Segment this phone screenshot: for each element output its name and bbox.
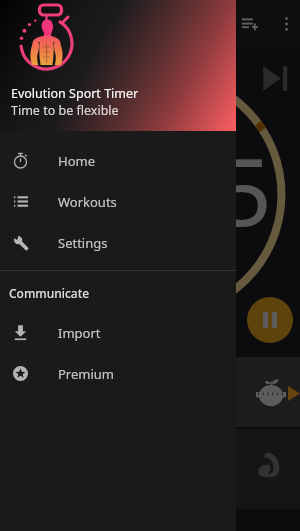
staticText: Home <box>58 152 95 170</box>
button[interactable]: Home <box>0 140 236 181</box>
button[interactable] <box>0 429 300 509</box>
button[interactable]: Workouts <box>0 181 236 222</box>
button[interactable]: Add to playlist <box>236 8 264 40</box>
staticText: Time to be flexible <box>11 102 119 119</box>
button[interactable]: Premium <box>0 353 236 394</box>
button[interactable]: Import <box>0 312 236 353</box>
staticText: Premium <box>58 365 115 383</box>
button[interactable]: More options <box>278 8 296 36</box>
staticText: Workouts <box>58 193 117 211</box>
staticText: Settings <box>58 234 108 252</box>
staticText: Communicate <box>9 285 90 301</box>
button[interactable]: Pause <box>247 297 293 343</box>
staticText: 5 <box>218 126 272 254</box>
staticText: Evolution Sport Timer <box>11 85 139 102</box>
staticText: Import <box>58 324 101 342</box>
button[interactable]: Skip next <box>258 60 294 96</box>
button[interactable] <box>0 357 300 427</box>
button[interactable]: Settings <box>0 222 236 263</box>
